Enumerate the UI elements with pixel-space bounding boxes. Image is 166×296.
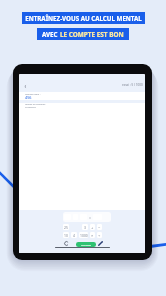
button[interactable]: VALIDER bbox=[76, 242, 96, 247]
staticText: nombre cible : bbox=[25, 93, 41, 96]
button[interactable]: 25 bbox=[63, 224, 69, 230]
staticText: LE COMPTE EST BON bbox=[60, 30, 124, 39]
staticText: 3 bbox=[84, 225, 86, 230]
staticText: essai : 5 / 1000 bbox=[122, 83, 143, 87]
button[interactable]: + bbox=[90, 224, 95, 230]
button[interactable]: 1000 bbox=[79, 232, 88, 238]
staticText: 10 bbox=[64, 233, 68, 238]
staticText: ENTRAÎNEZ-VOUS AU CALCUL MENTAL bbox=[25, 14, 142, 22]
staticText: AVEC bbox=[42, 30, 60, 38]
button[interactable]: Effacer bbox=[98, 241, 103, 246]
button[interactable]: × bbox=[90, 232, 95, 238]
staticText: = bbox=[89, 215, 92, 220]
staticText: 1000 bbox=[80, 233, 88, 238]
button[interactable]: 3 bbox=[82, 224, 88, 230]
button[interactable]: 4 bbox=[71, 232, 77, 238]
staticText: × bbox=[91, 233, 94, 238]
button[interactable]: − bbox=[97, 224, 102, 230]
staticText: + bbox=[91, 225, 94, 230]
button[interactable]: Retour bbox=[23, 84, 28, 89]
staticText: 4 bbox=[73, 233, 75, 238]
button[interactable]: ÷ bbox=[97, 232, 102, 238]
staticText: VALIDER bbox=[81, 243, 92, 246]
staticText: 25 bbox=[64, 225, 68, 230]
staticText: utilisez les nombres bbox=[25, 103, 46, 106]
staticText: 456 bbox=[25, 95, 32, 100]
staticText: ci-dessous bbox=[25, 106, 36, 109]
staticText: ÷ bbox=[98, 233, 101, 238]
button[interactable]: Recommencer bbox=[64, 241, 69, 246]
button[interactable]: 10 bbox=[63, 232, 69, 238]
staticText: − bbox=[98, 225, 101, 230]
